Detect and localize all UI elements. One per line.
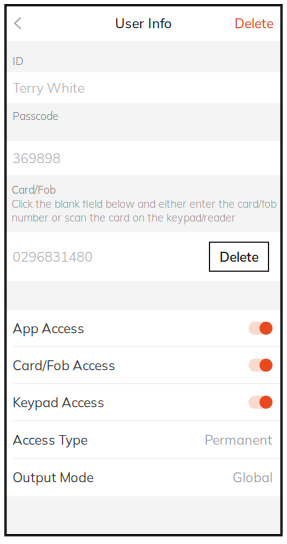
staticText: Delete [234,15,273,31]
staticText: App Access [12,320,84,336]
button[interactable]: Back [5,5,63,41]
staticText: Card/Fob Access [12,357,115,373]
staticText: Passcode [12,109,58,123]
staticText: 0296831480 [12,248,92,265]
staticText: 369898 [12,150,60,166]
button[interactable]: Access Type [5,421,281,459]
staticText: Permanent [204,431,272,448]
button[interactable]: Keypad Access [5,384,281,421]
staticText: Terry White [12,79,84,96]
staticText: Card/Fob [11,183,55,196]
staticText: Delete [219,248,258,265]
staticText: number or scan the card on the keypad/re… [11,211,235,224]
button[interactable]: Delete [209,242,268,271]
staticText: Access Type [12,431,87,448]
button[interactable]: Card/Fob Access [5,347,281,384]
staticText: Output Mode [12,469,93,485]
button[interactable]: Delete [223,5,281,41]
staticText: Click the blank field below and either e… [11,197,276,210]
button[interactable]: App Access [5,310,281,347]
staticText: User Info [115,15,172,31]
button[interactable]: Output Mode [5,459,281,496]
staticText: ID [12,54,23,68]
staticText: Keypad Access [12,394,104,410]
staticText: Global [232,469,272,485]
